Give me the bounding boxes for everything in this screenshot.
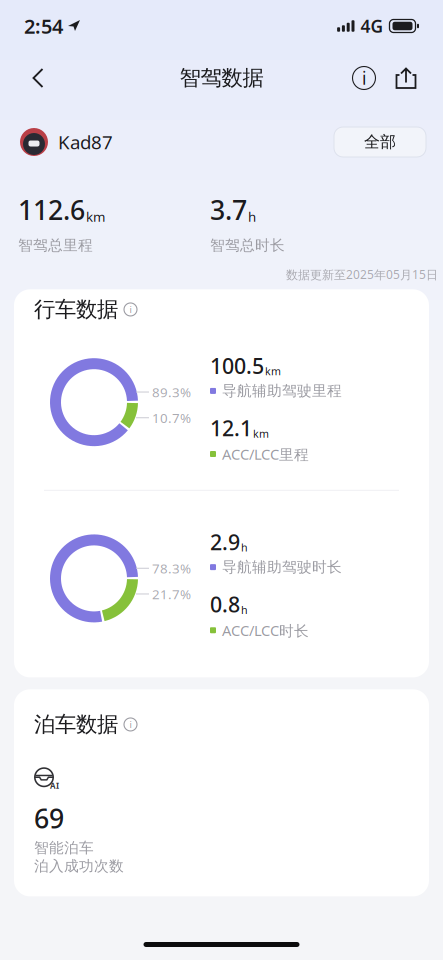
staticText: 12.1 (210, 414, 252, 442)
staticText: i (362, 66, 366, 89)
button[interactable]: 全部 (334, 127, 426, 157)
staticText: h (241, 540, 248, 555)
staticText: 泊入成功次数 (34, 857, 124, 875)
staticText: i (129, 718, 131, 731)
staticText: km (265, 364, 281, 378)
staticText: 112.6 (18, 192, 85, 227)
button[interactable]: 返回 (16, 56, 60, 100)
staticText: 2:54 (24, 13, 63, 39)
staticText: AI (50, 780, 59, 791)
staticText: 69 (34, 801, 64, 836)
staticText: 全部 (364, 132, 396, 152)
staticText: 10.7% (152, 409, 191, 427)
staticText: 89.3% (152, 383, 191, 401)
staticText: h (248, 208, 256, 225)
staticText: ACC/LCC里程 (222, 444, 309, 464)
staticText: Kad87 (58, 130, 113, 154)
staticText: 泊车数据 (34, 711, 118, 738)
button[interactable]: 说明 (343, 56, 385, 100)
staticText: 导航辅助驾驶里程 (222, 382, 342, 400)
staticText: 2.9 (210, 528, 240, 556)
staticText: 智驾总时长 (210, 236, 285, 254)
staticText: h (241, 603, 248, 617)
staticText: 导航辅助驾驶时长 (222, 558, 342, 576)
staticText: 78.3% (152, 559, 191, 577)
staticText: ACC/LCC时长 (222, 620, 309, 640)
staticText: 数据更新至2025年05月15日 (286, 266, 438, 282)
staticText: km (253, 426, 269, 441)
staticText: 智驾数据 (179, 65, 263, 91)
button[interactable]: 分享 (385, 56, 427, 100)
staticText: 3.7 (210, 192, 247, 227)
staticText: km (86, 208, 105, 225)
staticText: 0.8 (210, 590, 240, 618)
staticText: 智驾总里程 (18, 236, 93, 254)
staticText: i (129, 303, 131, 316)
staticText: 智能泊车 (34, 839, 94, 857)
staticText: 100.5 (210, 352, 264, 380)
staticText: 行车数据 (34, 296, 118, 323)
staticText: 21.7% (152, 585, 191, 603)
staticText: 4G (360, 14, 383, 37)
